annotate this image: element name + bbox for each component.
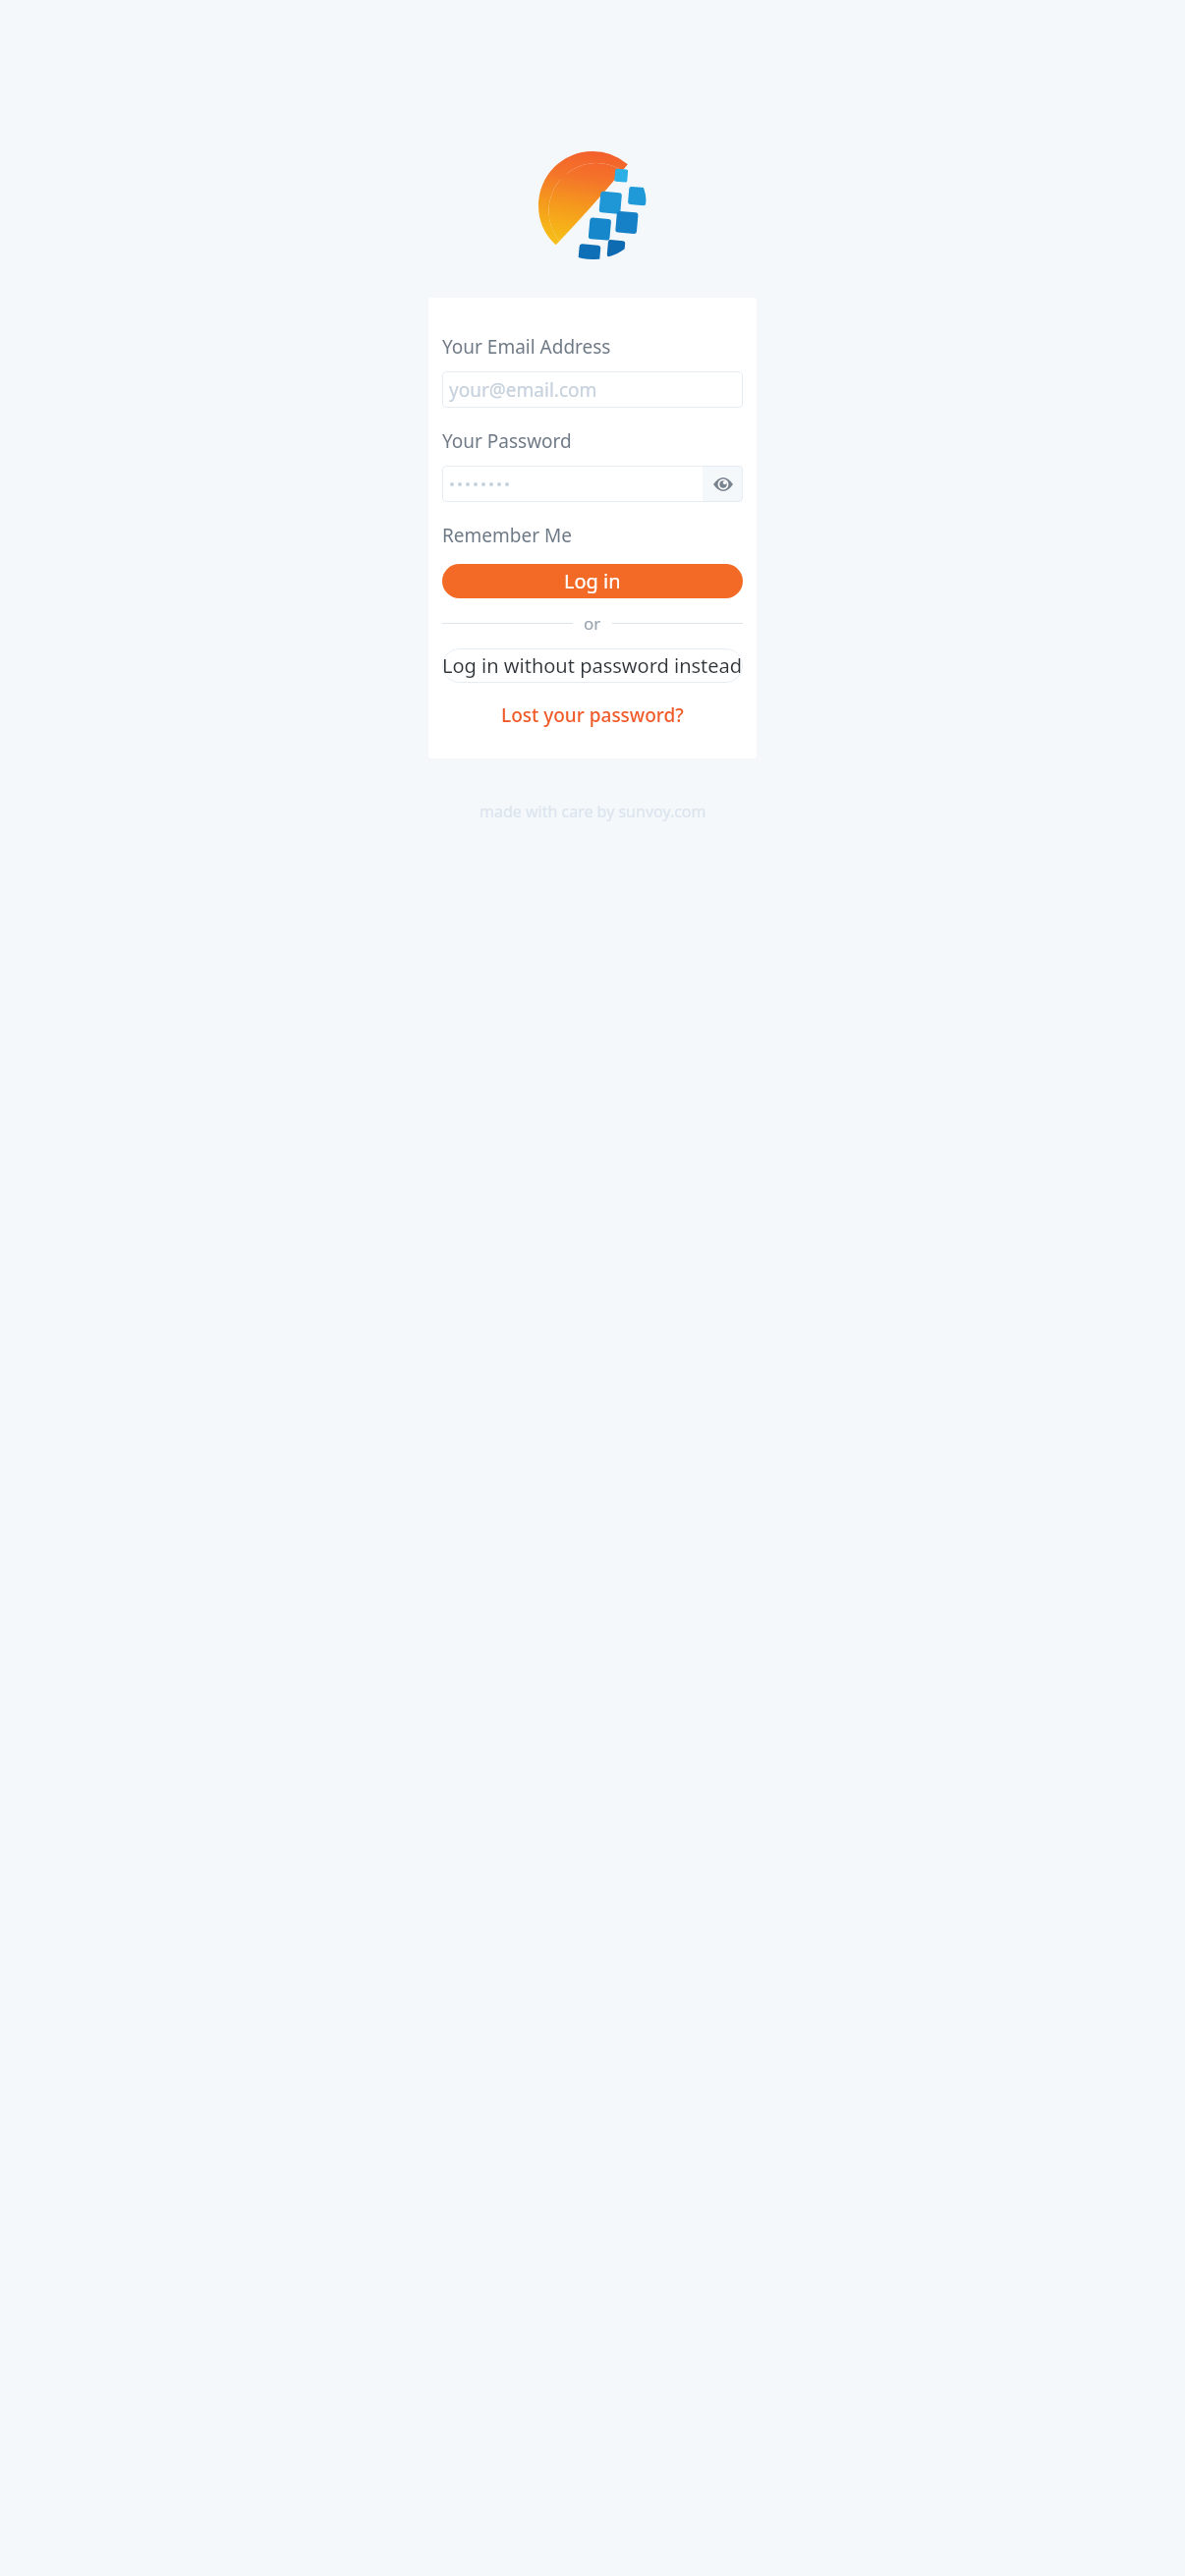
staticText: or xyxy=(584,612,601,635)
button[interactable]: Lost your password? xyxy=(497,700,688,730)
button[interactable]: Log in xyxy=(442,564,743,598)
staticText: your@email.com xyxy=(449,377,597,403)
staticText: Log in xyxy=(564,568,621,594)
button[interactable] xyxy=(442,466,703,502)
button[interactable]: Show password xyxy=(703,466,743,502)
staticText: made with care by sunvoy.com xyxy=(480,801,706,822)
staticText: Lost your password? xyxy=(501,702,684,728)
staticText: Log in without password instead xyxy=(442,652,743,679)
staticText: Your Email Address xyxy=(442,334,611,360)
staticText: Your Password xyxy=(442,428,572,454)
staticText: Remember Me xyxy=(442,523,572,548)
button[interactable]: Log in without password instead xyxy=(442,648,743,683)
button[interactable]: your@email.com xyxy=(442,371,743,408)
